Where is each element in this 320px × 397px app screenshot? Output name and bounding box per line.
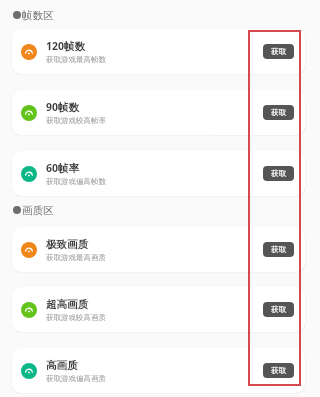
button[interactable]: Signal	[12, 287, 305, 332]
staticText: 帧数区	[22, 9, 54, 22]
button[interactable]: Signal	[12, 348, 305, 393]
staticText: 画质区	[22, 204, 54, 217]
staticText: 获取	[271, 366, 286, 375]
button[interactable]: Signal	[12, 29, 305, 74]
button[interactable]: Signal	[12, 90, 305, 135]
button[interactable]: 获取	[263, 44, 294, 59]
staticText: 获取游戏较高画质	[46, 313, 106, 322]
other: Signal	[21, 242, 37, 258]
other: Signal	[21, 166, 37, 182]
button[interactable]: 获取	[263, 302, 294, 317]
button[interactable]: Signal	[12, 151, 305, 196]
button[interactable]: 获取	[263, 363, 294, 378]
staticText: 获取	[271, 169, 286, 178]
button[interactable]: Signal	[12, 227, 305, 272]
staticText: 获取	[271, 47, 286, 56]
staticText: 获取游戏偏高画质	[46, 374, 106, 383]
staticText: 获取游戏最高帧数	[46, 55, 106, 64]
staticText: 获取	[271, 245, 286, 254]
other: Signal	[21, 302, 37, 318]
staticText: 超高画质	[46, 298, 88, 311]
staticText: 获取游戏最高画质	[46, 253, 106, 262]
staticText: 高画质	[46, 359, 78, 372]
button[interactable]: 获取	[263, 242, 294, 257]
button[interactable]: 获取	[263, 166, 294, 181]
staticText: 120帧数	[46, 39, 86, 53]
other: Signal	[21, 44, 37, 60]
staticText: 获取	[271, 305, 286, 314]
staticText: 60帧率	[46, 161, 80, 175]
other: Highlight	[248, 30, 301, 386]
staticText: 90帧数	[46, 100, 80, 114]
staticText: 极致画质	[46, 238, 88, 251]
other: Signal	[21, 105, 37, 121]
other: Signal	[21, 363, 37, 379]
staticText: 获取游戏偏高帧数	[46, 177, 106, 186]
staticText: 获取	[271, 108, 286, 117]
button[interactable]: 获取	[263, 105, 294, 120]
staticText: 获取游戏较高帧率	[46, 116, 106, 125]
